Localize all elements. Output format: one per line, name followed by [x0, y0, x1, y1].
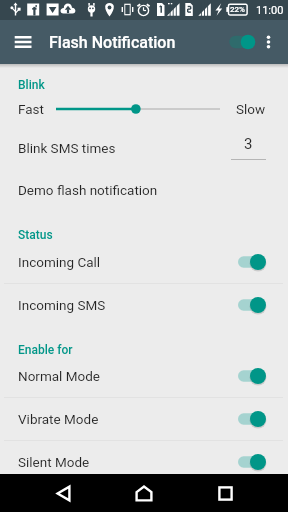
button[interactable]: Open navigation drawer [9, 28, 37, 56]
button[interactable]: Incoming SMS [0, 283, 288, 326]
staticText: 3 [244, 135, 253, 153]
staticText: Status [18, 228, 53, 242]
staticText: Incoming SMS [18, 297, 238, 313]
button[interactable]: Normal Mode [0, 354, 288, 397]
button[interactable]: Blink SMS times [0, 127, 288, 168]
button[interactable]: Back [41, 474, 85, 512]
button[interactable]: Toggle flash notification [224, 27, 258, 57]
staticText: Blink [18, 78, 45, 92]
button[interactable]: Demo flash notification [0, 169, 288, 210]
staticText: Demo flash notification [18, 182, 158, 198]
button[interactable]: Home [122, 474, 166, 512]
button[interactable]: Vibrate Mode [0, 397, 288, 440]
staticText: Slow [236, 101, 266, 117]
staticText: 11:00 [256, 4, 284, 17]
staticText: Silent Mode [18, 454, 238, 470]
staticText: Normal Mode [18, 368, 238, 384]
staticText: Blink SMS times [18, 140, 231, 156]
staticText: Vibrate Mode [18, 411, 238, 427]
staticText: Enable for [18, 343, 73, 357]
button[interactable]: Recent apps [203, 474, 247, 512]
button[interactable]: More options [258, 27, 280, 57]
button[interactable]: Silent Mode [0, 440, 288, 483]
staticText: 22% [230, 5, 245, 14]
staticText: Fast [18, 101, 44, 117]
button[interactable]: Incoming Call [0, 240, 288, 283]
staticText: Flash Notification [49, 33, 176, 52]
staticText: Incoming Call [18, 254, 238, 270]
